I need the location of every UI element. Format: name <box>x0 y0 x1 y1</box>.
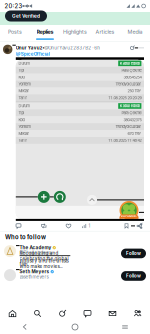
staticText: KAZANDIRAN <box>121 215 137 221</box>
button[interactable]: Media <box>120 25 150 41</box>
button[interactable]: Recent apps <box>100 324 150 330</box>
button[interactable]: Back <box>0 323 50 330</box>
staticText: 20:23 <box>4 2 22 10</box>
button[interactable]: Bookmark <box>122 221 131 230</box>
button[interactable]: Follow <box>121 271 146 281</box>
button[interactable]: Reply <box>16 221 41 230</box>
staticText: Posts <box>8 28 22 35</box>
staticText: Highlights <box>63 28 87 35</box>
staticText: Replies <box>36 28 53 35</box>
staticText: Articles <box>95 28 114 35</box>
staticText: The Academy <box>20 245 52 250</box>
staticText: Para Çekme <box>121 68 141 73</box>
staticText: Who to follow <box>5 234 46 241</box>
button[interactable]: The Academy <box>0 243 150 266</box>
staticText: Tarih <box>18 95 27 100</box>
staticText: Trendyolcüzdan <box>115 124 141 129</box>
button[interactable]: Messages <box>100 310 125 317</box>
staticText: 670 TRY <box>127 131 141 136</box>
staticText: 380545254 <box>123 75 141 79</box>
button[interactable]: Views <box>82 221 102 230</box>
button[interactable]: Home <box>0 310 25 317</box>
staticText: Miktar <box>18 89 28 93</box>
staticText: Follow <box>126 251 141 256</box>
staticText: Yöntem <box>18 82 30 86</box>
staticText: Kabul edildi <box>120 61 140 66</box>
staticText: @SpiceOfficial <box>16 51 50 57</box>
staticText: 380432375 <box>123 117 141 122</box>
staticText: @sethmeyers <box>20 274 49 280</box>
staticText: 1 <box>88 223 90 228</box>
button[interactable]: Get Verified <box>5 13 47 24</box>
staticText: Get Verified <box>12 13 40 19</box>
staticText: Kod <box>18 75 24 79</box>
button[interactable]: Search <box>25 310 50 317</box>
staticText: Para Çekme <box>121 110 141 115</box>
staticText: Durum <box>18 104 29 108</box>
button[interactable]: Communities <box>125 310 150 317</box>
button[interactable]: Articles <box>90 25 120 41</box>
staticText: Onur Yavuz <box>16 45 43 51</box>
staticText: @TheAcademy <box>20 250 54 256</box>
staticText: Seth Meyers <box>20 269 50 274</box>
button[interactable]: Like <box>66 221 82 230</box>
staticText: Miktar <box>18 131 28 136</box>
staticText: Tipi <box>18 110 24 115</box>
staticText: Tarih <box>18 138 27 143</box>
staticText: Kabul edildi <box>120 104 140 108</box>
button[interactable]: Follow <box>121 249 146 258</box>
staticText: industry and the artists who make movies… <box>20 258 69 269</box>
staticText: Recognizing and celebrating the global f… <box>20 250 69 267</box>
button[interactable]: Seth Meyers <box>0 266 150 281</box>
staticText: Trendyolcüzdan <box>115 82 141 86</box>
button[interactable]: Share <box>135 221 144 230</box>
button[interactable]: Posts <box>0 25 30 41</box>
staticText: Durum <box>18 61 29 66</box>
button[interactable]: Repost <box>41 221 66 230</box>
staticText: 11.08.2025 11:48:42 <box>108 138 141 143</box>
button[interactable]: Highlights <box>60 25 90 41</box>
button[interactable]: Notifications <box>75 310 100 317</box>
button[interactable]: Grok <box>50 310 75 317</box>
staticText: Tipi <box>18 68 24 73</box>
staticText: Kod <box>18 117 24 122</box>
staticText: 250 TRY <box>127 89 141 93</box>
staticText: 11.08.2025 20:20:29 <box>108 95 141 100</box>
button[interactable]: Home <box>50 324 100 330</box>
staticText: @OnurYavuz2837B2 · 6h <box>44 45 100 51</box>
staticText: Follow <box>126 273 141 279</box>
button[interactable]: Replies <box>30 25 60 41</box>
staticText: Yöntem <box>18 124 30 129</box>
staticText: Media <box>127 28 142 35</box>
